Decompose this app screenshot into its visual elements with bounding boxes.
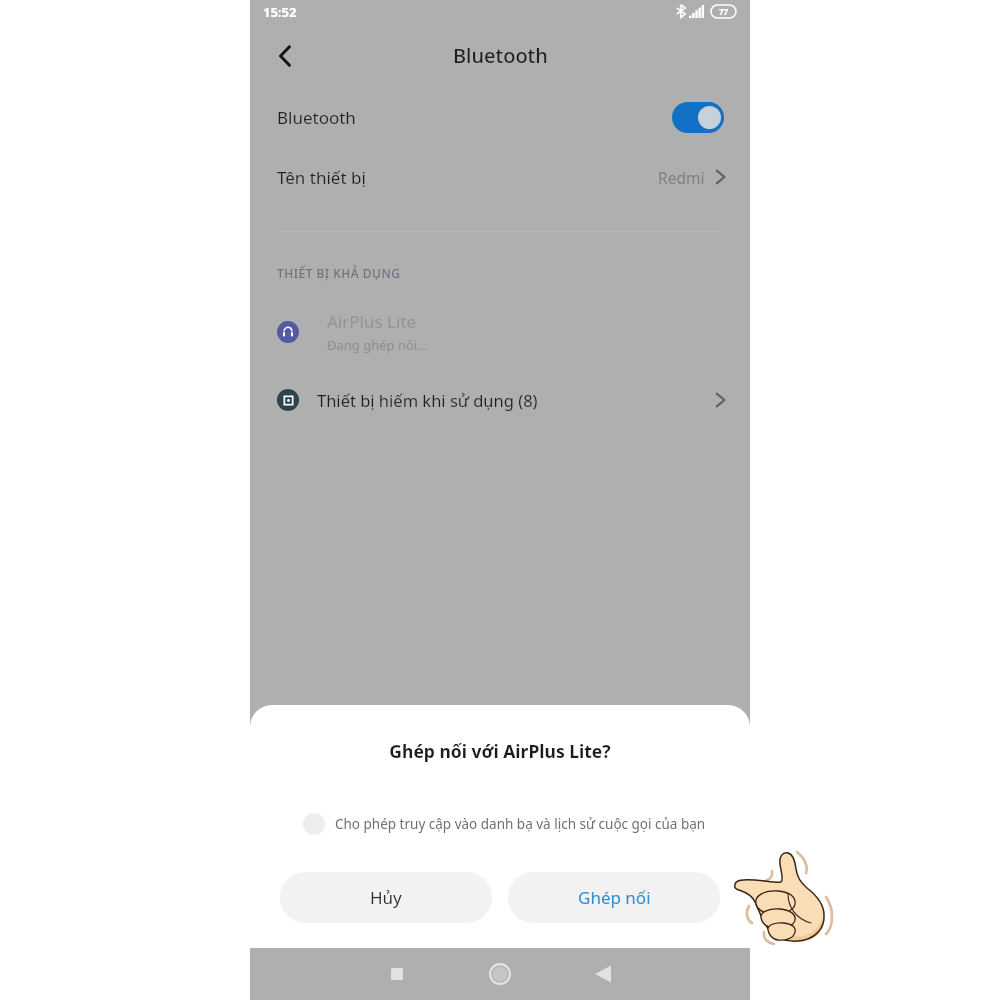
staticText: Bluetooth	[277, 106, 356, 129]
button[interactable]: Cho phép truy cập vào danh bạ và lịch sử…	[254, 813, 750, 835]
staticText: Hủy	[370, 886, 402, 909]
button[interactable]: Home	[475, 949, 525, 999]
staticText: Thiết bị hiếm khi sử dụng (8)	[317, 389, 538, 411]
button[interactable]: Tên thiết bị	[250, 148, 750, 206]
staticText: 15:52	[263, 3, 297, 21]
staticText: Đang ghép nối...	[327, 336, 428, 354]
button[interactable]: Ghép nối	[508, 872, 720, 923]
button[interactable]: Thiết bị hiếm khi sử dụng (8)	[250, 373, 750, 427]
staticText: Ghép nối	[578, 886, 651, 909]
staticText: Cho phép truy cập vào danh bạ và lịch sử…	[335, 815, 706, 833]
staticText: Ghép nối với AirPlus Lite?	[250, 739, 750, 763]
button[interactable]: Recent apps	[372, 949, 422, 999]
staticText: THIẾT BỊ KHẢ DỤNG	[277, 265, 401, 281]
button[interactable]: Hủy	[280, 872, 492, 923]
button[interactable]: AirPlus Lite	[250, 300, 750, 364]
button[interactable]: Back	[259, 30, 311, 82]
button[interactable]: Back	[578, 949, 628, 999]
button[interactable]: Bluetooth on	[672, 102, 724, 133]
staticText: Bluetooth	[453, 42, 548, 69]
staticText: Redmi	[658, 167, 705, 188]
button[interactable]: Bluetooth	[250, 88, 750, 146]
staticText: AirPlus Lite	[327, 310, 417, 333]
staticText: Tên thiết bị	[277, 166, 366, 189]
staticText: 77	[719, 6, 729, 17]
